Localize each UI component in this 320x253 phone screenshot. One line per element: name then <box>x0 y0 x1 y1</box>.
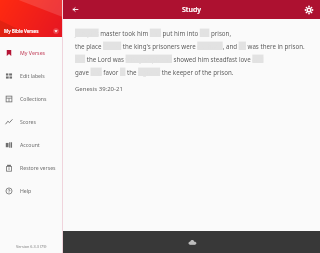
button[interactable]: Account <box>0 133 62 156</box>
staticText: Joseph's master took him and put him int… <box>75 29 232 37</box>
button[interactable]: My Verses <box>0 41 62 64</box>
staticText: Restore verses <box>20 164 56 171</box>
button[interactable]: Edit labels <box>0 64 62 87</box>
button[interactable]: Restore verses <box>0 156 62 179</box>
button[interactable]: My Bible Verses <box>0 28 62 37</box>
staticText: Version 6.3.3 (79) <box>16 244 47 249</box>
staticText: the place where the king's prisoners wer… <box>75 42 305 50</box>
button[interactable]: Sync to cloud <box>184 234 200 250</box>
staticText: My Bible Verses <box>4 28 39 34</box>
staticText: Help <box>20 187 32 194</box>
staticText: Edit labels <box>20 72 45 79</box>
staticText: gave him favor in the sight of the keepe… <box>75 68 234 76</box>
button[interactable]: Back <box>69 3 82 16</box>
staticText: Scores <box>20 118 36 125</box>
button[interactable]: Settings <box>302 3 315 16</box>
staticText: My Verses <box>20 49 46 56</box>
staticText: Account <box>20 141 40 148</box>
staticText: Genesis 39:20-21 <box>75 85 123 93</box>
staticText: But the Lord was with Joseph and showed … <box>75 55 264 63</box>
button[interactable]: Collections <box>0 87 62 110</box>
staticText: Study <box>182 5 201 15</box>
button[interactable]: Scores <box>0 110 62 133</box>
staticText: Collections <box>20 95 47 102</box>
button[interactable]: Help <box>0 179 62 202</box>
